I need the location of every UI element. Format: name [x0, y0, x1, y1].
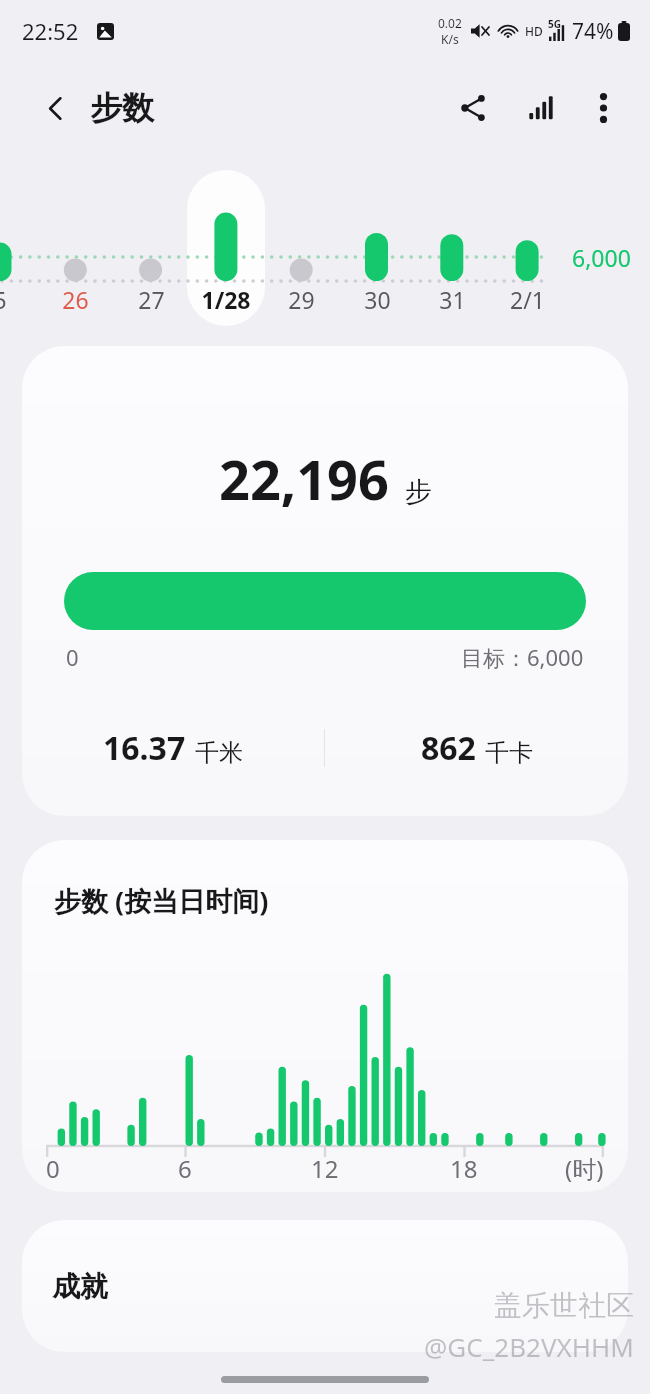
- button[interactable]: 29: [264, 280, 338, 318]
- button[interactable]: 26: [38, 280, 112, 318]
- staticText: 29: [288, 284, 315, 315]
- button[interactable]: Statistics: [514, 81, 568, 135]
- staticText: (时): [565, 1152, 604, 1185]
- button[interactable]: More options: [576, 81, 630, 135]
- staticText: 22:52: [22, 16, 79, 46]
- staticText: 26: [62, 284, 89, 315]
- staticText: 步: [405, 475, 432, 509]
- button[interactable]: 2/1: [490, 280, 564, 318]
- button[interactable]: 成就: [22, 1220, 628, 1352]
- staticText: 5G: [548, 17, 561, 31]
- staticText: HD: [525, 23, 543, 39]
- staticText: 步数 (按当日时间): [54, 882, 269, 919]
- staticText: 74%: [572, 17, 614, 46]
- staticText: 0: [46, 1152, 60, 1185]
- staticText: 目标：6,000: [461, 642, 584, 672]
- staticText: 30: [364, 284, 391, 315]
- button[interactable]: 步数 (按当日时间): [22, 840, 628, 1192]
- staticText: 0.02: [438, 15, 462, 31]
- staticText: 千米: [195, 738, 243, 768]
- staticText: 成就: [52, 1269, 108, 1304]
- staticText: 6: [178, 1152, 192, 1185]
- button[interactable]: 27: [114, 280, 188, 318]
- staticText: 862: [421, 726, 476, 770]
- staticText: 2/1: [510, 284, 545, 315]
- staticText: 27: [138, 284, 165, 315]
- staticText: 盖乐世社区: [494, 1288, 634, 1323]
- staticText: 6,000: [572, 242, 631, 273]
- staticText: 千卡: [485, 738, 533, 768]
- staticText: K/s: [441, 31, 459, 47]
- staticText: 步数: [90, 88, 154, 128]
- button[interactable]: Back: [32, 85, 78, 131]
- staticText: 18: [450, 1152, 478, 1185]
- button[interactable]: 5: [0, 280, 37, 318]
- button[interactable]: 22,196: [22, 346, 628, 816]
- button[interactable]: Share: [446, 81, 500, 135]
- button[interactable]: [187, 170, 265, 326]
- staticText: 1/28: [201, 284, 251, 315]
- staticText: @GC_2B2VXHHM: [424, 1329, 634, 1364]
- staticText: 12: [311, 1152, 339, 1185]
- staticText: 22,196: [219, 442, 389, 516]
- staticText: 16.37: [103, 726, 186, 770]
- button[interactable]: 30: [340, 280, 414, 318]
- staticText: 0: [66, 642, 79, 672]
- button[interactable]: 31: [415, 280, 489, 318]
- staticText: 31: [439, 284, 466, 315]
- button[interactable]: 1/28: [189, 280, 263, 318]
- staticText: 5: [0, 284, 7, 315]
